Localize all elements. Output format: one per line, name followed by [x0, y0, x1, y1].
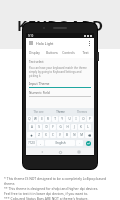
button[interactable]: T	[52, 116, 58, 122]
staticText: Input Theme	[29, 81, 50, 86]
staticText: R	[47, 117, 49, 121]
button[interactable]: J	[71, 124, 77, 130]
staticText: U	[68, 117, 71, 121]
button[interactable]: Back	[39, 149, 45, 155]
button[interactable]: V	[57, 132, 63, 138]
staticText: C	[52, 133, 54, 137]
button[interactable]: F	[50, 124, 56, 130]
staticText: V	[59, 133, 61, 137]
button[interactable]: U	[66, 116, 72, 122]
staticText: KEYBOARD	[17, 15, 104, 35]
button[interactable]: E	[39, 116, 44, 122]
staticText: Text	[82, 51, 89, 55]
staticText: K	[80, 125, 82, 129]
staticText: * This theme IS NOT designed to be a com…	[4, 176, 116, 186]
button[interactable]: P	[87, 116, 93, 122]
button[interactable]: M	[78, 132, 84, 138]
staticText: L	[87, 125, 89, 129]
staticText: T	[54, 117, 56, 121]
button[interactable]: B	[64, 132, 70, 138]
staticText: *** Coloured Status Bars ARE NOT a theme…	[4, 196, 116, 200]
button[interactable]: Menu	[28, 40, 34, 46]
button[interactable]: C	[50, 132, 56, 138]
staticText: Buttons	[46, 51, 58, 55]
staticText: A	[31, 125, 33, 129]
button[interactable]: G	[57, 124, 63, 130]
button[interactable]: H	[64, 124, 70, 130]
button[interactable]: .	[76, 140, 83, 146]
staticText: 9:10	[28, 34, 34, 38]
staticText: O	[82, 117, 85, 121]
button[interactable]: Recents	[76, 149, 82, 155]
staticText: English	[55, 141, 66, 145]
staticText: J	[74, 125, 75, 129]
button[interactable]: Enter	[84, 140, 93, 146]
button[interactable]: R	[45, 116, 51, 122]
button[interactable]: O	[80, 116, 86, 122]
staticText: Z	[38, 133, 40, 137]
staticText: E	[41, 117, 43, 121]
button[interactable]: L	[85, 124, 91, 130]
staticText: Controls	[62, 51, 75, 55]
staticText: Y	[61, 117, 63, 121]
staticText: .	[79, 141, 80, 145]
button[interactable]: K	[78, 124, 84, 130]
staticText: The one	[33, 110, 44, 114]
staticText: S	[38, 125, 40, 129]
staticText: Theme	[56, 110, 65, 114]
staticText: X	[45, 133, 47, 137]
button[interactable]: Backspace	[85, 132, 93, 138]
button[interactable]: I	[73, 116, 79, 122]
staticText: B	[66, 133, 68, 137]
button[interactable]: Text	[77, 51, 94, 55]
staticText: Numeric Field	[29, 91, 50, 95]
staticText: ** This theme is designed for xhdpi and …	[4, 186, 116, 191]
staticText: W	[34, 117, 37, 121]
button[interactable]: D	[43, 124, 49, 130]
button[interactable]: Q	[27, 116, 32, 122]
staticText: ?123	[28, 141, 35, 145]
button[interactable]: Themes	[71, 110, 93, 114]
button[interactable]: The one	[27, 110, 49, 114]
staticText: Q	[28, 117, 31, 121]
staticText: G	[59, 125, 62, 129]
staticText: Text select	[29, 60, 44, 64]
button[interactable]: X	[43, 132, 49, 138]
staticText: F	[52, 125, 54, 129]
staticText: P	[89, 117, 91, 121]
button[interactable]: Theme	[49, 110, 71, 114]
button[interactable]: Y	[59, 116, 65, 122]
button[interactable]: Buttons	[43, 51, 60, 55]
staticText: Themes	[77, 110, 87, 114]
button[interactable]: ?123	[27, 140, 36, 146]
staticText: You can have your keyboard match the the…	[29, 66, 91, 78]
button[interactable]: ,	[37, 140, 44, 146]
button[interactable]: Z	[36, 132, 42, 138]
staticText: Feel free to test it in lower dpi device…	[4, 191, 116, 196]
staticText: M	[80, 133, 83, 137]
button[interactable]: English	[45, 140, 75, 146]
button[interactable]: More options	[86, 40, 92, 46]
staticText: H	[66, 125, 69, 129]
staticText: Display	[29, 51, 40, 55]
button[interactable]: Display	[26, 51, 43, 55]
staticText: ,	[40, 141, 41, 145]
staticText: D	[45, 125, 48, 129]
button[interactable]: Controls	[60, 51, 77, 55]
staticText: N	[73, 133, 76, 137]
button[interactable]: Home	[57, 149, 63, 155]
staticText: Holo Light	[36, 41, 54, 46]
button[interactable]: S	[36, 124, 42, 130]
button[interactable]: A	[29, 124, 35, 130]
button[interactable]: N	[71, 132, 77, 138]
button[interactable]: W	[33, 116, 38, 122]
staticText: I	[75, 117, 77, 121]
button[interactable]: Shift	[27, 132, 35, 138]
